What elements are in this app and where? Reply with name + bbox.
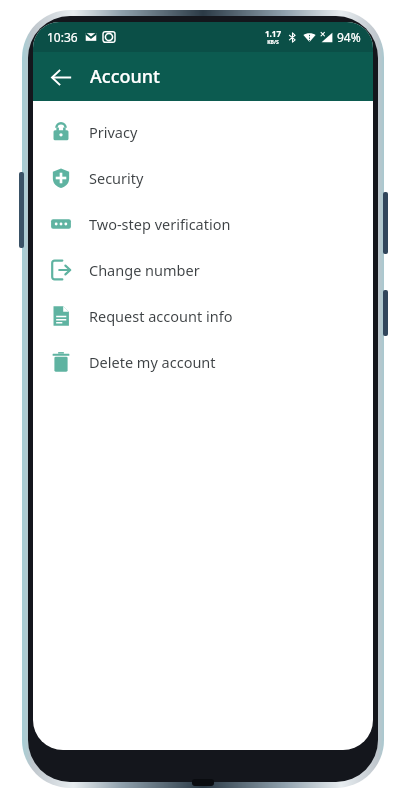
- button[interactable]: Back: [41, 57, 81, 97]
- staticText: KB/S: [267, 39, 279, 46]
- staticText: Two-step verification: [89, 214, 231, 234]
- staticText: Account: [90, 64, 160, 89]
- staticText: 1.17: [265, 28, 281, 39]
- staticText: Security: [89, 168, 144, 188]
- button[interactable]: Delete my account: [33, 339, 373, 385]
- button[interactable]: Security: [33, 155, 373, 201]
- staticText: Change number: [89, 260, 200, 280]
- staticText: 94%: [337, 29, 361, 45]
- button[interactable]: Request account info: [33, 293, 373, 339]
- staticText: 10:36: [47, 29, 78, 45]
- button[interactable]: Two-step verification: [33, 201, 373, 247]
- button[interactable]: Change number: [33, 247, 373, 293]
- staticText: Request account info: [89, 306, 233, 326]
- staticText: Delete my account: [89, 352, 216, 372]
- button[interactable]: Privacy: [33, 109, 373, 155]
- staticText: Privacy: [89, 122, 138, 142]
